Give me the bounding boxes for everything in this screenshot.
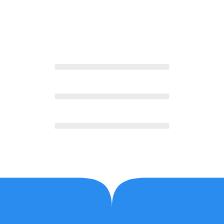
- button[interactable]: Open book reader: [0, 0, 224, 224]
